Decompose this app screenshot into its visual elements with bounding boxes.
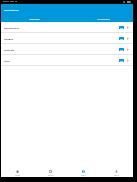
staticText: VER <box>120 49 124 51</box>
button[interactable]: Ver <box>119 37 124 40</box>
other: Profile <box>115 170 118 173</box>
staticText: Documentos <box>4 8 19 11</box>
staticText: VER <box>120 38 124 40</box>
staticText: VER <box>120 27 124 29</box>
button[interactable]: Documentos <box>1 22 133 32</box>
button[interactable]: Documents <box>67 170 100 177</box>
button[interactable]: Otro <box>1 55 133 65</box>
button[interactable]: ALTAMIRA <box>1 14 67 22</box>
staticText: ALTAMIRA <box>29 18 40 21</box>
button[interactable]: Home <box>1 170 34 177</box>
staticText: Contrato <box>4 48 119 51</box>
other: Home <box>16 170 19 173</box>
staticText: VER <box>120 60 124 62</box>
staticText: CATEGORÍAS <box>97 18 110 21</box>
button[interactable]: Profile <box>100 170 133 177</box>
staticText: Inicio <box>15 174 21 177</box>
staticText: 10:24 Mar 14 <box>3 0 17 3</box>
button[interactable]: Imagen <box>1 33 133 43</box>
other: Notes <box>49 170 52 173</box>
button[interactable]: Ver <box>119 26 124 29</box>
staticText: Notas <box>48 174 54 177</box>
other: Documents <box>82 170 85 173</box>
staticText: Docs <box>81 174 86 177</box>
button[interactable]: Notes <box>34 170 67 177</box>
staticText: Otro <box>4 59 119 62</box>
button[interactable]: Ver <box>119 48 124 51</box>
staticText: Documentos <box>4 26 119 29</box>
button[interactable]: Contrato <box>1 44 133 54</box>
staticText: Perfil <box>114 174 119 177</box>
button[interactable]: CATEGORÍAS <box>67 14 133 22</box>
button[interactable]: Ver <box>119 59 124 62</box>
staticText: Imagen <box>4 37 119 40</box>
